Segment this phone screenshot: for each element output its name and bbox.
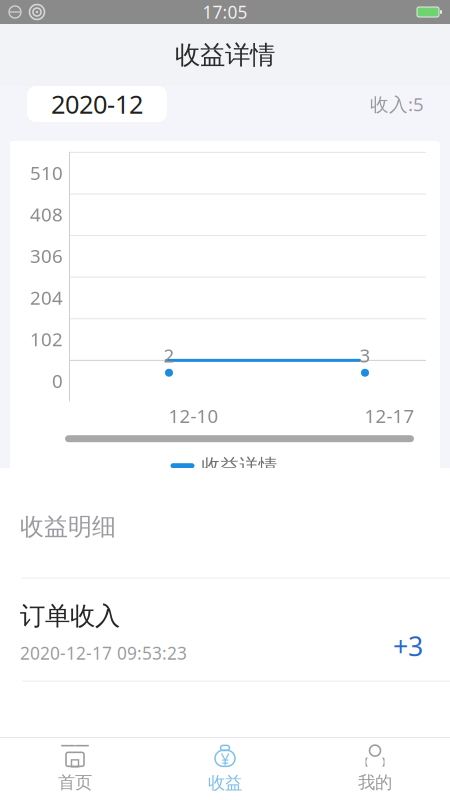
- staticText: 收益详情: [175, 39, 275, 70]
- staticText: 12-10: [168, 403, 218, 428]
- staticText: 2: [163, 343, 174, 368]
- staticText: 2020-12: [51, 87, 143, 121]
- staticText: 204: [30, 285, 63, 310]
- staticText: 收益详情: [201, 454, 277, 477]
- staticText: 510: [30, 160, 63, 185]
- staticText: 我的: [358, 772, 392, 793]
- button[interactable]: 首页: [0, 738, 150, 800]
- button[interactable]: 订单收入: [0, 578, 450, 681]
- button[interactable]: ¥: [150, 738, 300, 800]
- staticText: 3: [359, 343, 370, 368]
- staticText: 0: [52, 368, 63, 393]
- staticText: 408: [30, 202, 63, 227]
- staticText: ¥: [220, 749, 229, 770]
- staticText: 102: [30, 327, 63, 351]
- staticText: 订单收入: [20, 600, 120, 632]
- staticText: 收入:5: [370, 92, 424, 116]
- staticText: 首页: [58, 772, 92, 793]
- button[interactable]: 2020-12: [27, 86, 167, 122]
- staticText: 306: [30, 243, 63, 268]
- staticText: +3: [393, 628, 423, 664]
- staticText: 收益明细: [20, 512, 116, 541]
- staticText: 12-17: [364, 403, 414, 428]
- staticText: 17:05: [202, 0, 247, 23]
- staticText: 收益: [208, 772, 242, 794]
- button[interactable]: 我的: [300, 738, 450, 800]
- staticText: 2020-12-17 09:53:23: [20, 642, 187, 665]
